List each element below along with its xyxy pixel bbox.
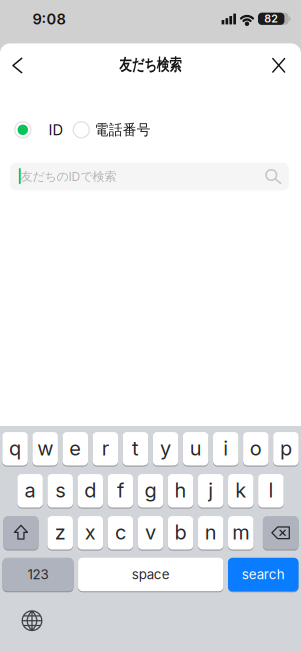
- staticText: j: [208, 478, 213, 502]
- staticText: a: [25, 478, 36, 502]
- staticText: i: [223, 436, 228, 460]
- button[interactable]: p: [273, 432, 299, 466]
- button[interactable]: v: [138, 516, 163, 549]
- button[interactable]: 電話番号: [73, 118, 148, 142]
- button[interactable]: x: [78, 516, 103, 549]
- button[interactable]: a: [17, 474, 43, 508]
- button[interactable]: k: [228, 474, 254, 508]
- staticText: l: [268, 478, 273, 502]
- staticText: 82: [264, 12, 278, 25]
- button[interactable]: y: [153, 432, 178, 466]
- button[interactable]: w: [32, 432, 58, 466]
- staticText: s: [55, 478, 65, 502]
- button[interactable]: search: [228, 558, 298, 591]
- staticText: e: [69, 436, 81, 460]
- staticText: search: [242, 567, 285, 582]
- button[interactable]: ID: [15, 118, 61, 142]
- button[interactable]: d: [78, 474, 103, 508]
- staticText: b: [175, 520, 187, 544]
- button[interactable]: 友だちのIDで検索: [10, 163, 289, 190]
- staticText: f: [117, 478, 124, 502]
- button[interactable]: Back: [3, 50, 33, 80]
- button[interactable]: b: [168, 516, 193, 549]
- button[interactable]: i: [213, 432, 238, 466]
- button[interactable]: q: [2, 432, 28, 466]
- button[interactable]: Close: [264, 50, 294, 80]
- staticText: z: [55, 520, 66, 544]
- staticText: 電話番号: [93, 121, 153, 139]
- staticText: x: [85, 520, 96, 544]
- staticText: 9:08: [32, 10, 65, 28]
- button[interactable]: u: [183, 432, 208, 466]
- staticText: g: [144, 478, 156, 502]
- button[interactable]: z: [47, 516, 73, 549]
- staticText: 友だちのIDで検索: [20, 169, 116, 184]
- staticText: o: [250, 436, 262, 460]
- staticText: 友だち検索: [110, 55, 190, 75]
- button[interactable]: c: [108, 516, 133, 549]
- button[interactable]: n: [198, 516, 223, 549]
- staticText: c: [115, 520, 126, 544]
- button[interactable]: Delete: [263, 516, 298, 549]
- staticText: ID: [48, 121, 63, 138]
- staticText: 123: [27, 567, 48, 582]
- button[interactable]: l: [258, 474, 284, 508]
- staticText: n: [205, 520, 217, 544]
- button[interactable]: Shift: [3, 516, 38, 549]
- staticText: v: [145, 520, 156, 544]
- staticText: u: [190, 436, 202, 460]
- button[interactable]: t: [123, 432, 148, 466]
- staticText: space: [132, 567, 170, 582]
- button[interactable]: space: [78, 558, 223, 591]
- button[interactable]: f: [108, 474, 133, 508]
- button[interactable]: h: [168, 474, 193, 508]
- staticText: y: [160, 436, 171, 460]
- button[interactable]: r: [93, 432, 118, 466]
- button[interactable]: s: [47, 474, 73, 508]
- button[interactable]: e: [62, 432, 88, 466]
- button[interactable]: g: [138, 474, 163, 508]
- button[interactable]: o: [243, 432, 269, 466]
- button[interactable]: j: [198, 474, 223, 508]
- staticText: p: [280, 436, 292, 460]
- button[interactable]: 123: [2, 558, 73, 591]
- button[interactable]: m: [228, 516, 254, 549]
- staticText: q: [9, 436, 21, 460]
- staticText: r: [102, 436, 109, 460]
- staticText: k: [235, 478, 246, 502]
- staticText: w: [37, 436, 53, 460]
- staticText: d: [84, 478, 96, 502]
- staticText: t: [132, 436, 139, 460]
- button[interactable]: Next keyboard: [19, 608, 45, 634]
- staticText: m: [232, 520, 249, 544]
- staticText: h: [175, 478, 187, 502]
